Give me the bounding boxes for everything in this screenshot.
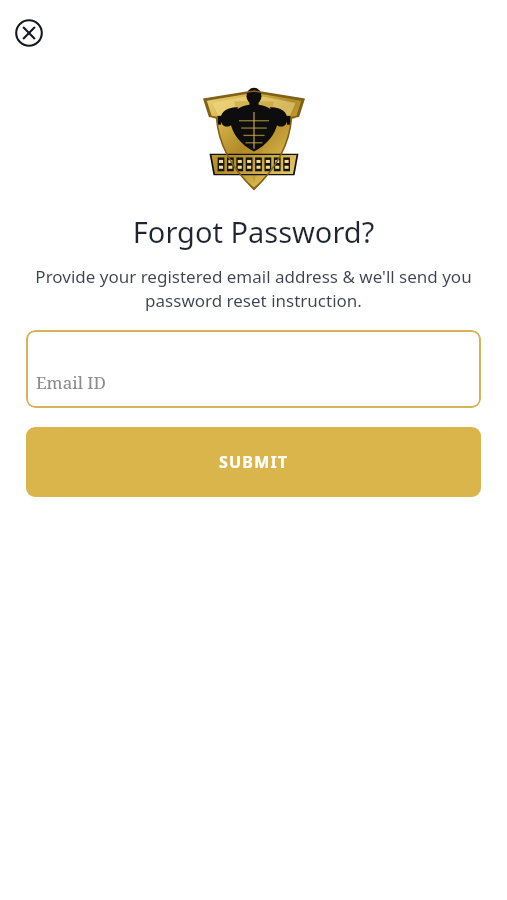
staticText: Forgot Password?	[0, 212, 507, 251]
button[interactable]: Email ID	[26, 330, 481, 408]
staticText: SUBMIT	[219, 451, 289, 473]
staticText: Email ID	[36, 371, 106, 394]
button[interactable]: SUBMIT	[26, 427, 481, 497]
staticText: Provide your registered email address & …	[22, 265, 485, 312]
button[interactable]: Close	[10, 14, 48, 52]
